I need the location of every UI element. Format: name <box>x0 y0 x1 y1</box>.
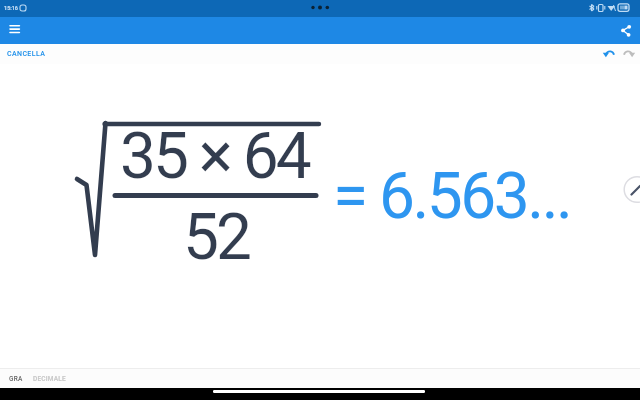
staticText: 15:16 <box>4 5 18 11</box>
staticText: DECIMALE <box>33 375 66 383</box>
staticText: CANCELLA <box>7 50 46 58</box>
staticText: 52 <box>183 200 249 275</box>
staticText: = 6.563... <box>333 159 571 234</box>
button[interactable]: GRA <box>4 369 28 388</box>
button[interactable]: DECIMALE <box>29 369 69 388</box>
staticText: 35 × 64 <box>120 119 309 194</box>
button[interactable] <box>4 21 25 39</box>
button[interactable] <box>620 44 638 64</box>
staticText: GRA <box>9 375 23 383</box>
button[interactable]: CANCELLA <box>2 44 54 64</box>
button[interactable] <box>600 44 618 64</box>
button[interactable] <box>616 22 636 40</box>
